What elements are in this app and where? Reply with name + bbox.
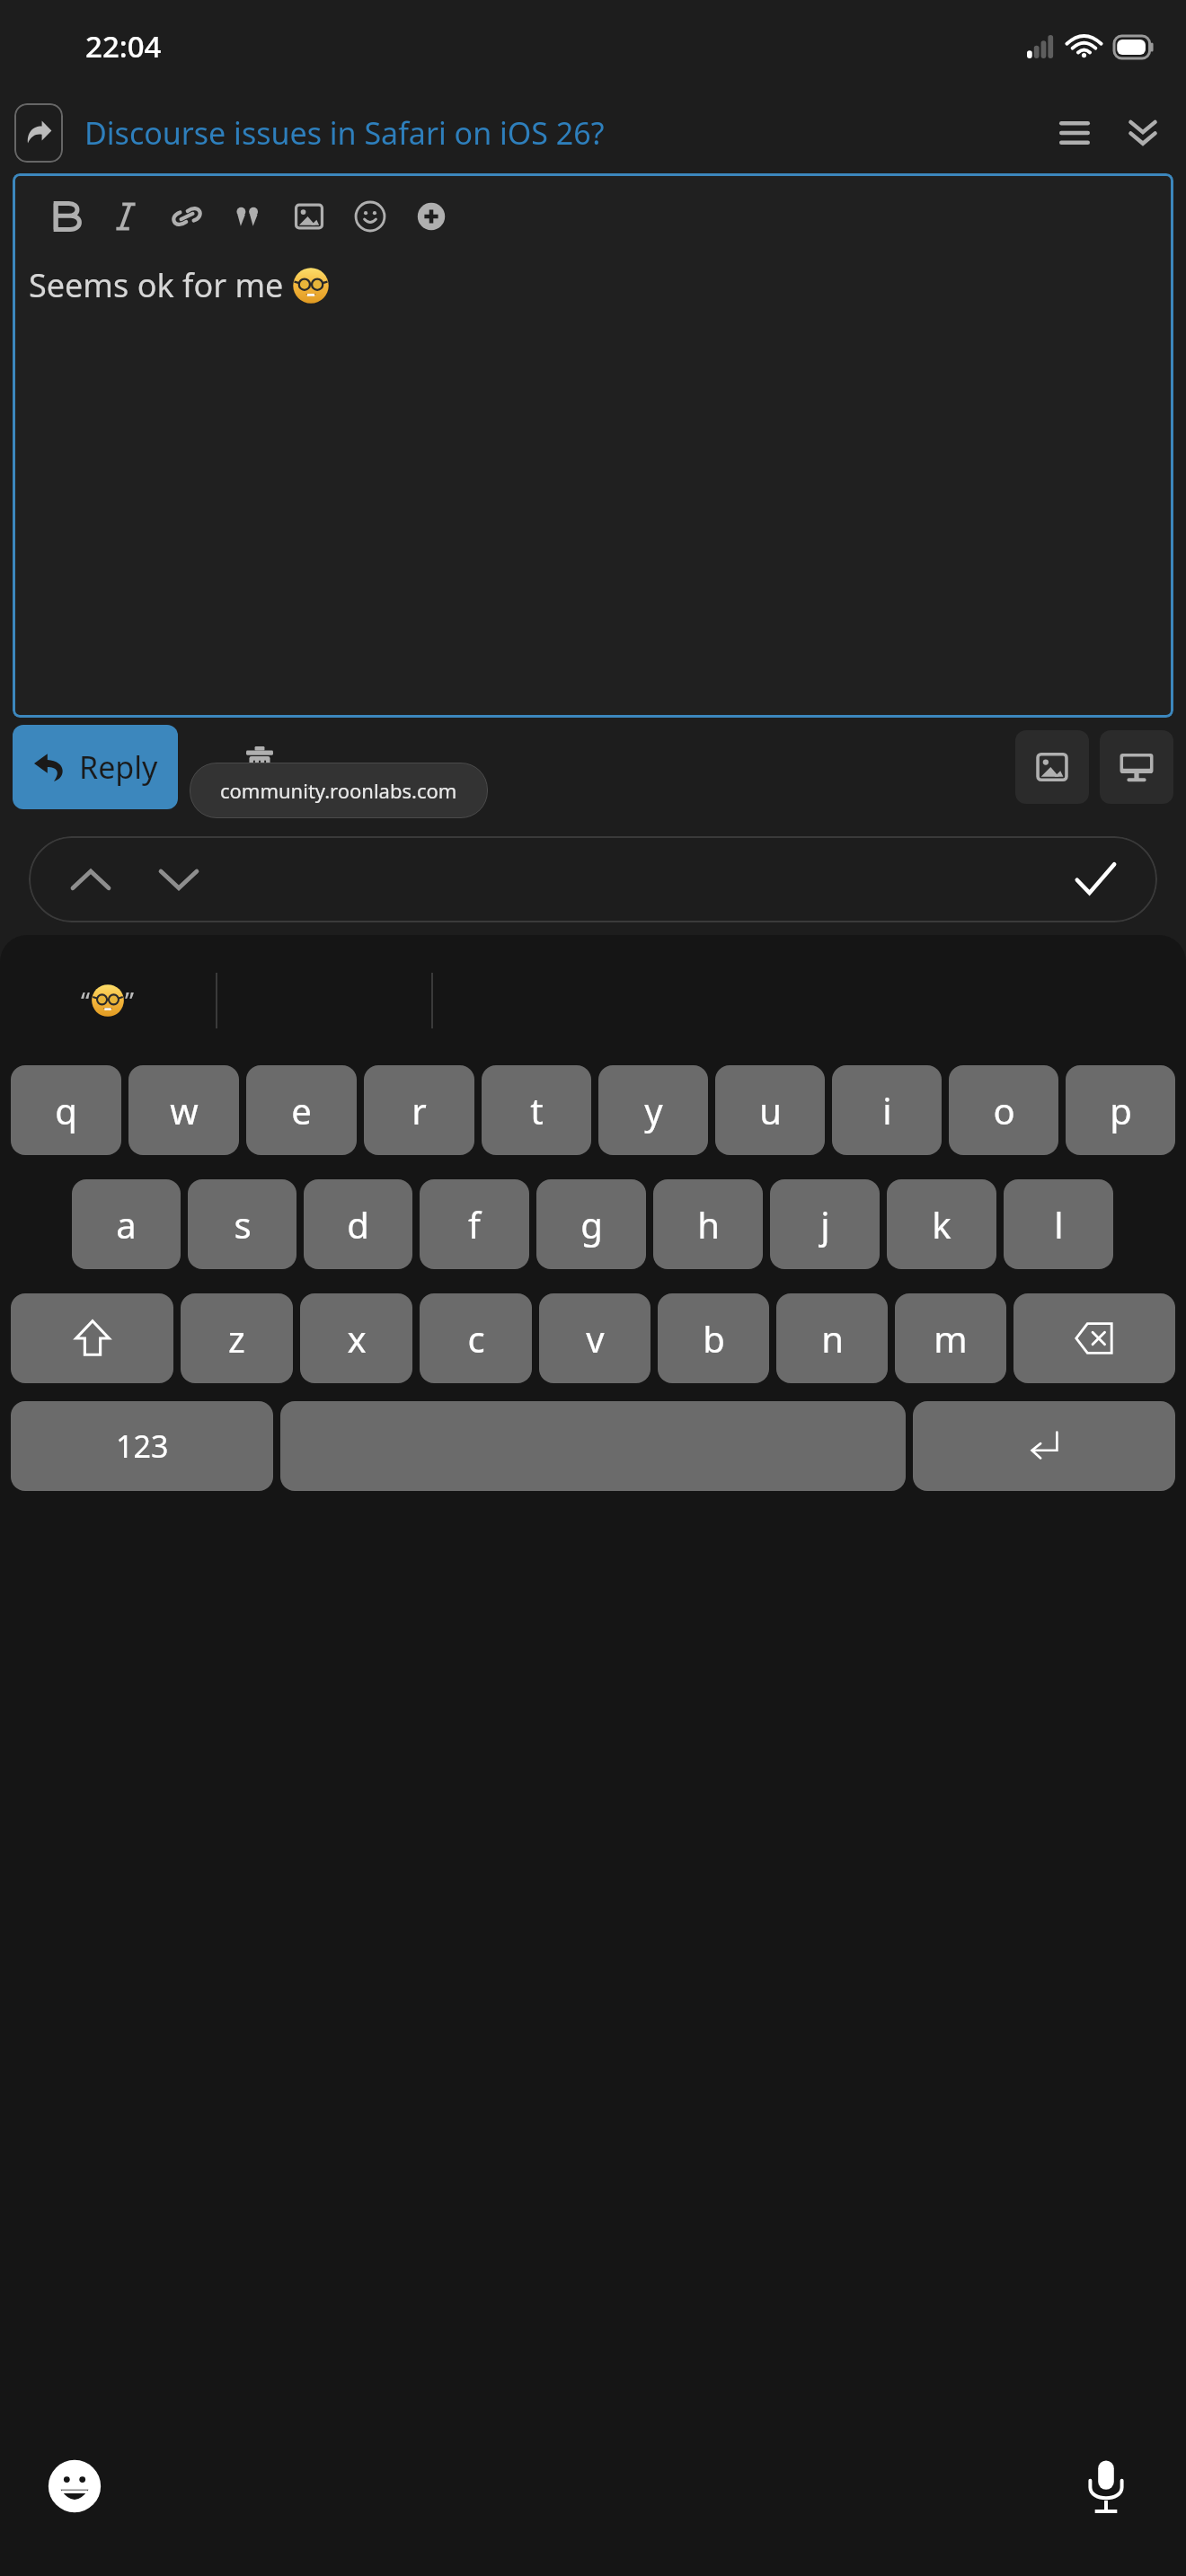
button[interactable]: f <box>420 1179 529 1269</box>
staticText: m <box>934 1314 968 1363</box>
staticText: b <box>703 1314 725 1363</box>
button[interactable]: Done <box>1064 848 1127 911</box>
button[interactable]: community.roonlabs.com <box>190 763 488 818</box>
staticText: g <box>580 1200 603 1248</box>
button[interactable]: Space <box>280 1401 906 1491</box>
button[interactable]: Previous field <box>59 848 122 911</box>
button[interactable]: Enter <box>913 1401 1175 1491</box>
button[interactable]: l <box>1004 1179 1113 1269</box>
staticText: r <box>412 1086 427 1134</box>
button[interactable]: Emoji <box>340 186 401 247</box>
button[interactable]: Link <box>156 186 217 247</box>
staticText: c <box>467 1314 485 1363</box>
button[interactable]: t <box>482 1065 591 1155</box>
button[interactable]: Next field <box>147 848 210 911</box>
button[interactable]: o <box>949 1065 1058 1155</box>
staticText: 123 <box>116 1425 169 1467</box>
button[interactable]: Reply <box>13 725 178 809</box>
staticText: w <box>170 1086 199 1134</box>
button[interactable]: Scroll to bottom <box>1114 104 1172 162</box>
staticText: d <box>347 1200 369 1248</box>
button[interactable]: q <box>11 1065 121 1155</box>
button[interactable]: “ <box>0 984 216 1018</box>
button[interactable]: Voice input <box>1066 2446 1146 2527</box>
button[interactable]: x <box>300 1293 412 1383</box>
button[interactable]: v <box>539 1293 651 1383</box>
button[interactable]: Menu <box>1046 104 1103 162</box>
staticText: f <box>468 1200 481 1248</box>
staticText: “ <box>81 984 91 1018</box>
button[interactable]: Insert image <box>1015 730 1089 804</box>
button[interactable]: h <box>653 1179 763 1269</box>
button[interactable]: j <box>770 1179 880 1269</box>
button[interactable]: d <box>304 1179 412 1269</box>
staticText: s <box>234 1200 252 1248</box>
button[interactable]: a <box>72 1179 181 1269</box>
button[interactable]: 123 <box>11 1401 273 1491</box>
button[interactable]: w <box>128 1065 239 1155</box>
staticText: u <box>759 1086 782 1134</box>
button[interactable]: r <box>364 1065 474 1155</box>
button[interactable]: u <box>715 1065 825 1155</box>
button[interactable]: c <box>420 1293 532 1383</box>
staticText: 22:04 <box>85 26 162 66</box>
staticText: Seems ok for me <box>29 263 292 307</box>
button[interactable]: Quote <box>217 186 279 247</box>
button[interactable]: Image <box>279 186 340 247</box>
staticText: h <box>697 1200 720 1248</box>
button[interactable]: p <box>1066 1065 1175 1155</box>
button[interactable]: Discourse issues in Safari on iOS 26? <box>84 112 1046 154</box>
button[interactable]: Shift <box>11 1293 173 1383</box>
button[interactable]: z <box>181 1293 293 1383</box>
staticText: v <box>586 1314 605 1363</box>
staticText: z <box>228 1314 245 1363</box>
staticText: ” <box>125 984 135 1018</box>
staticText: x <box>347 1314 367 1363</box>
button[interactable]: g <box>536 1179 646 1269</box>
button[interactable]: Backspace <box>1013 1293 1175 1383</box>
staticText: t <box>530 1086 544 1134</box>
button[interactable]: y <box>598 1065 708 1155</box>
button[interactable]: Desktop view <box>1100 730 1173 804</box>
button[interactable]: Emoji <box>34 2446 115 2527</box>
button[interactable]: Share <box>14 103 63 163</box>
button[interactable]: Bold <box>34 186 95 247</box>
button[interactable]: Delete <box>225 732 295 802</box>
button[interactable]: s <box>188 1179 296 1269</box>
staticText: q <box>55 1086 77 1134</box>
staticText: a <box>116 1200 137 1248</box>
button[interactable]: e <box>246 1065 357 1155</box>
staticText: k <box>932 1200 951 1248</box>
staticText: j <box>820 1200 830 1248</box>
button[interactable]: i <box>832 1065 942 1155</box>
button[interactable]: n <box>776 1293 888 1383</box>
staticText: e <box>291 1086 312 1134</box>
button[interactable]: More <box>401 186 462 247</box>
staticText: Reply <box>79 746 158 788</box>
staticText: y <box>644 1086 663 1134</box>
staticText: n <box>821 1314 844 1363</box>
button[interactable]: b <box>658 1293 769 1383</box>
staticText: p <box>1110 1086 1132 1134</box>
button[interactable]: Italic <box>95 186 156 247</box>
staticText: l <box>1054 1200 1064 1248</box>
staticText: i <box>882 1086 892 1134</box>
staticText: community.roonlabs.com <box>220 777 457 804</box>
staticText: o <box>993 1086 1015 1134</box>
button[interactable]: k <box>887 1179 996 1269</box>
button[interactable]: m <box>895 1293 1006 1383</box>
